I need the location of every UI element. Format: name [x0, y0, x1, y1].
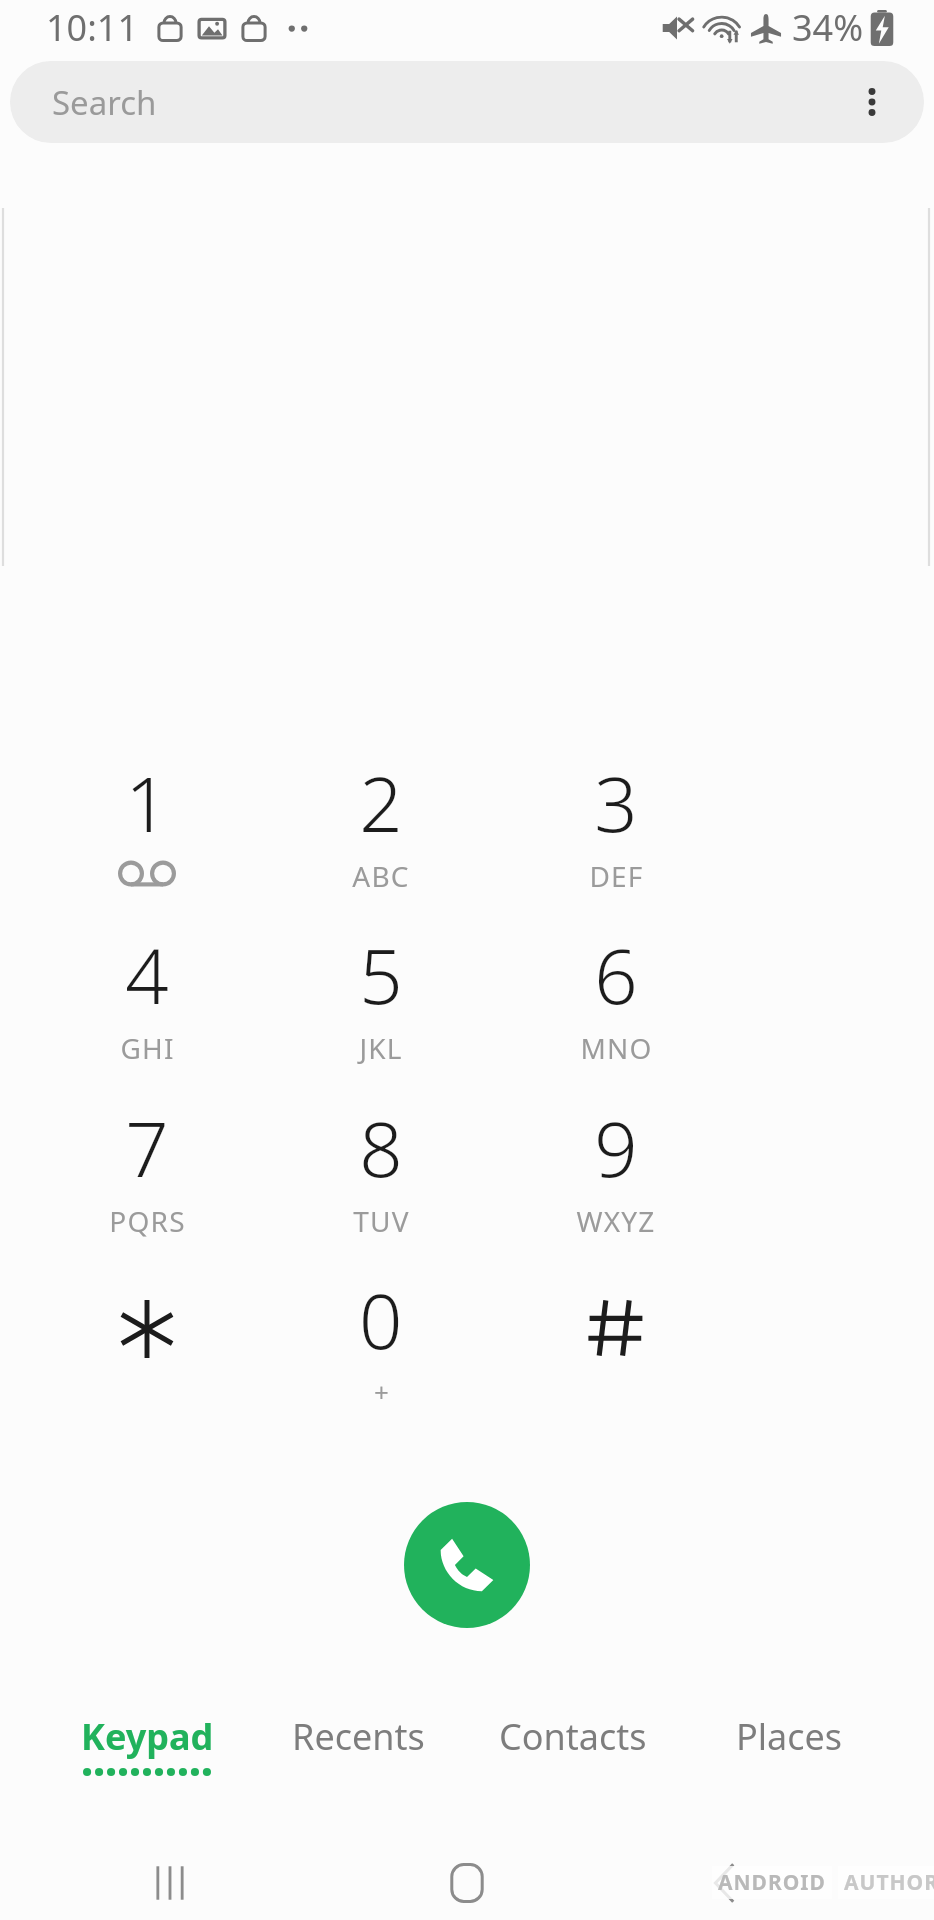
button[interactable] [30, 1274, 264, 1434]
button[interactable]: 0 [264, 1274, 498, 1434]
staticText: 7 [125, 1096, 169, 1200]
staticText: 34% [792, 3, 864, 52]
staticText: 8 [359, 1096, 403, 1200]
staticText: ANDROID [718, 1868, 826, 1897]
button[interactable]: 7 [30, 1102, 264, 1262]
staticText: ABC [352, 857, 410, 895]
button[interactable]: 2 [264, 757, 498, 917]
button[interactable]: Keypad [37, 1700, 257, 1800]
button[interactable]: Recents [248, 1700, 468, 1800]
staticText: JKL [359, 1029, 403, 1067]
staticText: MNO [580, 1029, 653, 1067]
staticText: 5 [359, 923, 403, 1027]
staticText: 6 [594, 923, 638, 1027]
staticText: GHI [120, 1029, 175, 1067]
button[interactable]: Recents [135, 1848, 205, 1918]
staticText: 9 [594, 1096, 638, 1200]
staticText: 2 [359, 751, 403, 855]
button[interactable]: 1 [30, 757, 264, 917]
staticText: Search [52, 80, 157, 125]
staticText: 4 [125, 923, 169, 1027]
button[interactable]: 4 [30, 929, 264, 1089]
button[interactable]: Search [10, 61, 924, 143]
staticText: WXYZ [576, 1202, 656, 1240]
staticText: Contacts [499, 1712, 647, 1761]
button[interactable]: 5 [264, 929, 498, 1089]
button[interactable]: 6 [499, 929, 733, 1089]
staticText: DEF [589, 857, 644, 895]
button[interactable]: 3 [499, 757, 733, 917]
button[interactable] [499, 1274, 733, 1434]
button[interactable]: 8 [264, 1102, 498, 1262]
button[interactable]: More options [836, 66, 908, 138]
button[interactable]: Call [404, 1502, 530, 1628]
staticText: 10:11 [46, 3, 139, 52]
button[interactable]: Contacts [463, 1700, 683, 1800]
staticText: PQRS [109, 1202, 186, 1240]
staticText: 0 [359, 1268, 403, 1372]
staticText: AUTHORITY [844, 1868, 934, 1897]
staticText: 1 [125, 751, 169, 855]
staticText: 3 [594, 751, 638, 855]
button[interactable]: Back [690, 1848, 760, 1918]
button[interactable]: Places [679, 1700, 899, 1800]
staticText: Keypad [81, 1712, 214, 1761]
staticText: + [374, 1374, 389, 1409]
staticText: Recents [292, 1712, 425, 1761]
button[interactable]: 9 [499, 1102, 733, 1262]
staticText: TUV [353, 1202, 410, 1240]
staticText: Places [736, 1712, 843, 1761]
button[interactable]: Home [432, 1848, 502, 1918]
